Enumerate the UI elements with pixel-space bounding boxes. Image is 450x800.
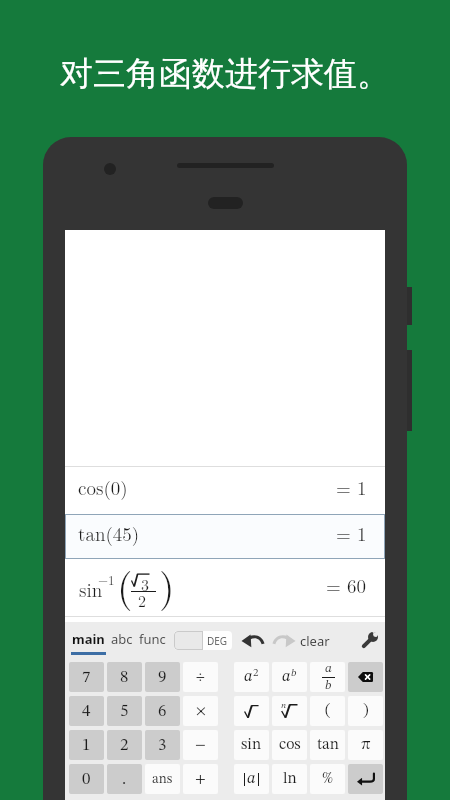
staticText: main <box>72 630 105 648</box>
button[interactable]: abs <box>234 764 269 794</box>
staticText: b <box>325 679 332 692</box>
staticText: 3 <box>141 573 150 596</box>
button[interactable]: 3 <box>145 730 180 760</box>
button[interactable]: ab <box>272 662 307 692</box>
button[interactable]: a2 <box>234 662 269 692</box>
button[interactable]: × <box>183 696 218 726</box>
staticText: ( <box>117 556 133 613</box>
button[interactable]: cos(0) <box>65 467 385 514</box>
button[interactable]: tan(45) <box>65 514 385 559</box>
staticText: 2 <box>253 668 259 679</box>
button[interactable]: Settings <box>359 631 379 651</box>
staticText: cos(0) <box>78 474 128 501</box>
staticText: 2 <box>120 737 129 754</box>
staticText: 7 <box>82 669 91 686</box>
staticText: = 1 <box>336 520 367 547</box>
button[interactable]: func <box>138 622 167 661</box>
button[interactable]: ÷ <box>183 662 218 692</box>
button[interactable]: main <box>71 622 106 661</box>
button[interactable]: 8 <box>107 662 142 692</box>
button[interactable]: cos <box>272 730 307 760</box>
staticText: + <box>195 772 206 787</box>
staticText: sin <box>241 737 262 753</box>
staticText: abc <box>111 630 133 648</box>
staticText: 8 <box>120 669 129 686</box>
button[interactable]: enter <box>348 764 383 794</box>
staticText: % <box>322 771 334 787</box>
button[interactable]: 0 <box>69 764 104 794</box>
staticText: −1 <box>98 570 115 588</box>
button[interactable]: sqrt <box>234 696 269 726</box>
staticText: 9 <box>158 669 167 686</box>
button[interactable]: clear <box>299 622 331 661</box>
button[interactable]: ) <box>348 696 383 726</box>
staticText: π <box>361 737 371 753</box>
staticText: func <box>139 630 166 648</box>
button[interactable]: . <box>107 764 142 794</box>
button[interactable]: π <box>348 730 383 760</box>
staticText: ÷ <box>196 670 205 685</box>
button[interactable]: DEG <box>174 631 232 650</box>
staticText: 0 <box>82 771 91 788</box>
button[interactable]: tan <box>310 730 345 760</box>
staticText: ) <box>159 556 175 613</box>
button[interactable]: abc <box>110 622 134 661</box>
button[interactable]: − <box>183 730 218 760</box>
staticText: DEG <box>207 634 228 648</box>
button[interactable]: 5 <box>107 696 142 726</box>
button[interactable]: 2 <box>107 730 142 760</box>
staticText: . <box>122 771 127 788</box>
staticText: cos <box>279 737 301 753</box>
button[interactable]: 4 <box>69 696 104 726</box>
staticText: clear <box>300 632 330 650</box>
staticText: b <box>291 668 297 679</box>
button[interactable]: nsqrt <box>272 696 307 726</box>
button[interactable]: Undo <box>241 631 265 650</box>
button[interactable]: 6 <box>145 696 180 726</box>
button[interactable]: ( <box>310 696 345 726</box>
staticText: ln <box>283 771 297 787</box>
staticText: tan <box>317 737 339 753</box>
staticText: ( <box>325 703 331 719</box>
button[interactable]: % <box>310 764 345 794</box>
staticText: 2 <box>138 589 147 612</box>
staticText: 1 <box>82 737 91 754</box>
staticText: a <box>244 669 253 685</box>
button[interactable]: ln <box>272 764 307 794</box>
staticText: ) <box>363 703 369 719</box>
staticText: sin <box>79 576 103 603</box>
button[interactable]: frac <box>310 662 345 692</box>
staticText: 4 <box>82 703 91 720</box>
button[interactable]: 9 <box>145 662 180 692</box>
staticText: 5 <box>120 703 129 720</box>
staticText: = 60 <box>326 572 367 599</box>
button[interactable]: 1 <box>69 730 104 760</box>
staticText: a <box>247 771 256 787</box>
staticText: n <box>281 701 287 710</box>
button[interactable]: 7 <box>69 662 104 692</box>
staticText: tan(45) <box>78 520 140 547</box>
button[interactable]: + <box>183 764 218 794</box>
staticText: 3 <box>158 737 167 754</box>
button[interactable]: sin <box>65 559 385 617</box>
staticText: ans <box>152 772 173 786</box>
staticText: a <box>325 662 332 675</box>
staticText: − <box>195 738 206 753</box>
button[interactable]: Redo <box>272 631 296 650</box>
staticText: = 1 <box>336 474 367 501</box>
staticText: 6 <box>158 703 167 720</box>
button[interactable]: ans <box>145 764 180 794</box>
button[interactable]: bksp <box>348 662 383 692</box>
staticText: 对三角函数进行求值。 <box>60 53 390 95</box>
staticText: × <box>196 704 206 719</box>
staticText: a <box>282 669 291 685</box>
button[interactable]: sin <box>234 730 269 760</box>
